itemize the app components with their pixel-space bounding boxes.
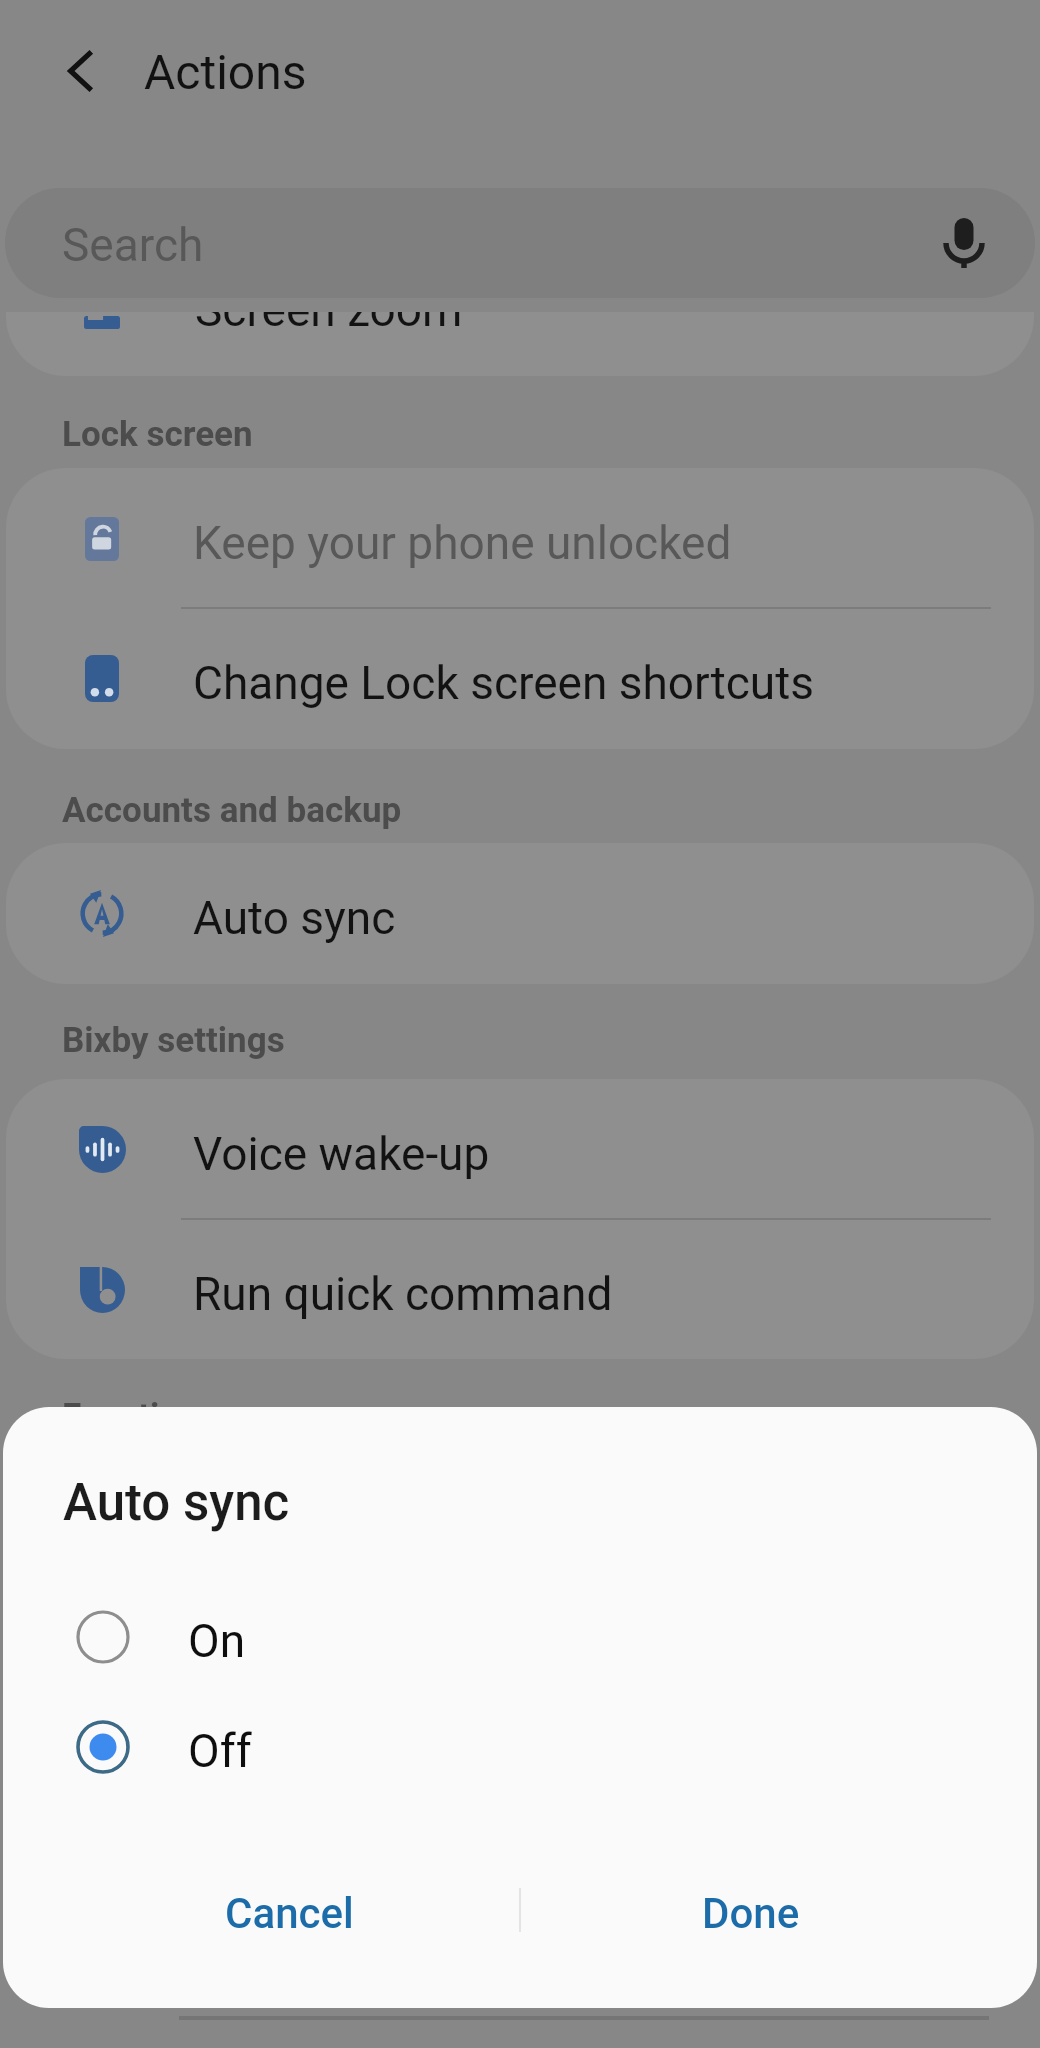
button[interactable]: Auto sync xyxy=(6,843,1034,984)
button[interactable]: Off xyxy=(3,1695,1037,1799)
staticText: Screen zoom xyxy=(195,312,463,337)
staticText: Voice wake-up xyxy=(193,1127,490,1181)
button[interactable]: Cancel xyxy=(3,1862,520,1962)
staticText: Lock screen xyxy=(62,414,253,455)
staticText: Cancel xyxy=(225,1889,354,1938)
button[interactable]: Search xyxy=(5,188,1035,298)
button[interactable]: Change Lock screen shortcuts xyxy=(6,608,1034,749)
button[interactable]: Done xyxy=(520,1862,1037,1962)
staticText: Accounts and backup xyxy=(62,790,402,831)
staticText: Keep your phone unlocked xyxy=(193,516,732,570)
button[interactable]: On xyxy=(3,1585,1037,1689)
staticText: Change Lock screen shortcuts xyxy=(193,656,815,710)
staticText: On xyxy=(188,1614,246,1668)
staticText: Done xyxy=(702,1889,800,1938)
staticText: Actions xyxy=(144,44,307,100)
staticText: Search xyxy=(62,218,204,272)
staticText: Off xyxy=(188,1724,252,1778)
staticText: Run quick command xyxy=(193,1267,613,1321)
button[interactable]: Screen zoom xyxy=(6,312,1034,376)
button[interactable]: Navigate up xyxy=(37,28,123,114)
staticText: Auto sync xyxy=(63,1473,290,1533)
button[interactable]: Voice search xyxy=(914,193,1014,293)
button[interactable]: Voice wake-up xyxy=(6,1079,1034,1220)
button[interactable]: Run quick command xyxy=(6,1219,1034,1359)
button[interactable]: Keep your phone unlocked xyxy=(6,468,1034,609)
staticText: Functions xyxy=(62,1396,217,1437)
staticText: Auto sync xyxy=(193,891,396,945)
staticText: Bixby settings xyxy=(62,1020,285,1061)
